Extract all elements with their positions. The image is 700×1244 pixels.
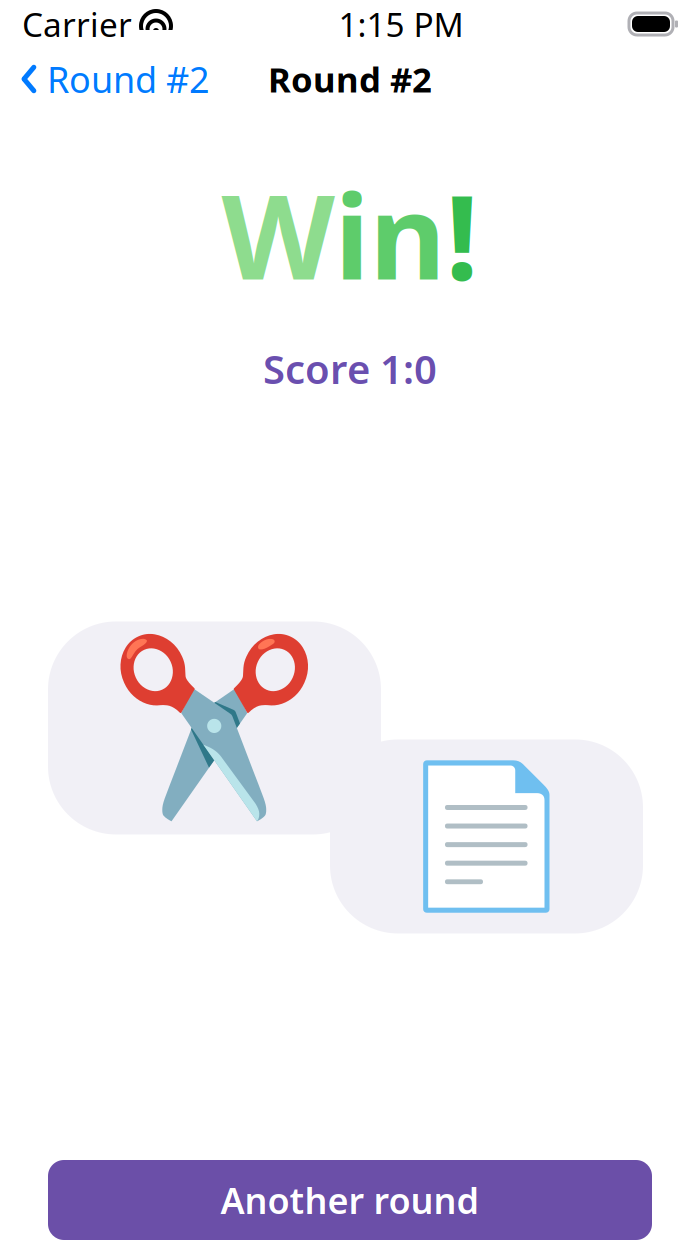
staticText: Score 1:0 — [263, 342, 437, 395]
button[interactable]: Round #2 — [0, 47, 210, 111]
staticText: 1:15 PM — [338, 2, 463, 46]
staticText: 📄 — [400, 757, 573, 916]
button[interactable]: Another round — [48, 1160, 652, 1240]
staticText: ! — [445, 156, 478, 312]
staticText: Round #2 — [47, 55, 210, 103]
staticText: Round #2 — [268, 56, 432, 102]
staticText: Carrier — [22, 2, 132, 46]
staticText: W — [221, 156, 334, 312]
staticText: ✂️ — [108, 630, 321, 825]
staticText: i — [334, 156, 369, 312]
staticText: Another round — [220, 1176, 479, 1224]
staticText: n — [369, 156, 445, 312]
